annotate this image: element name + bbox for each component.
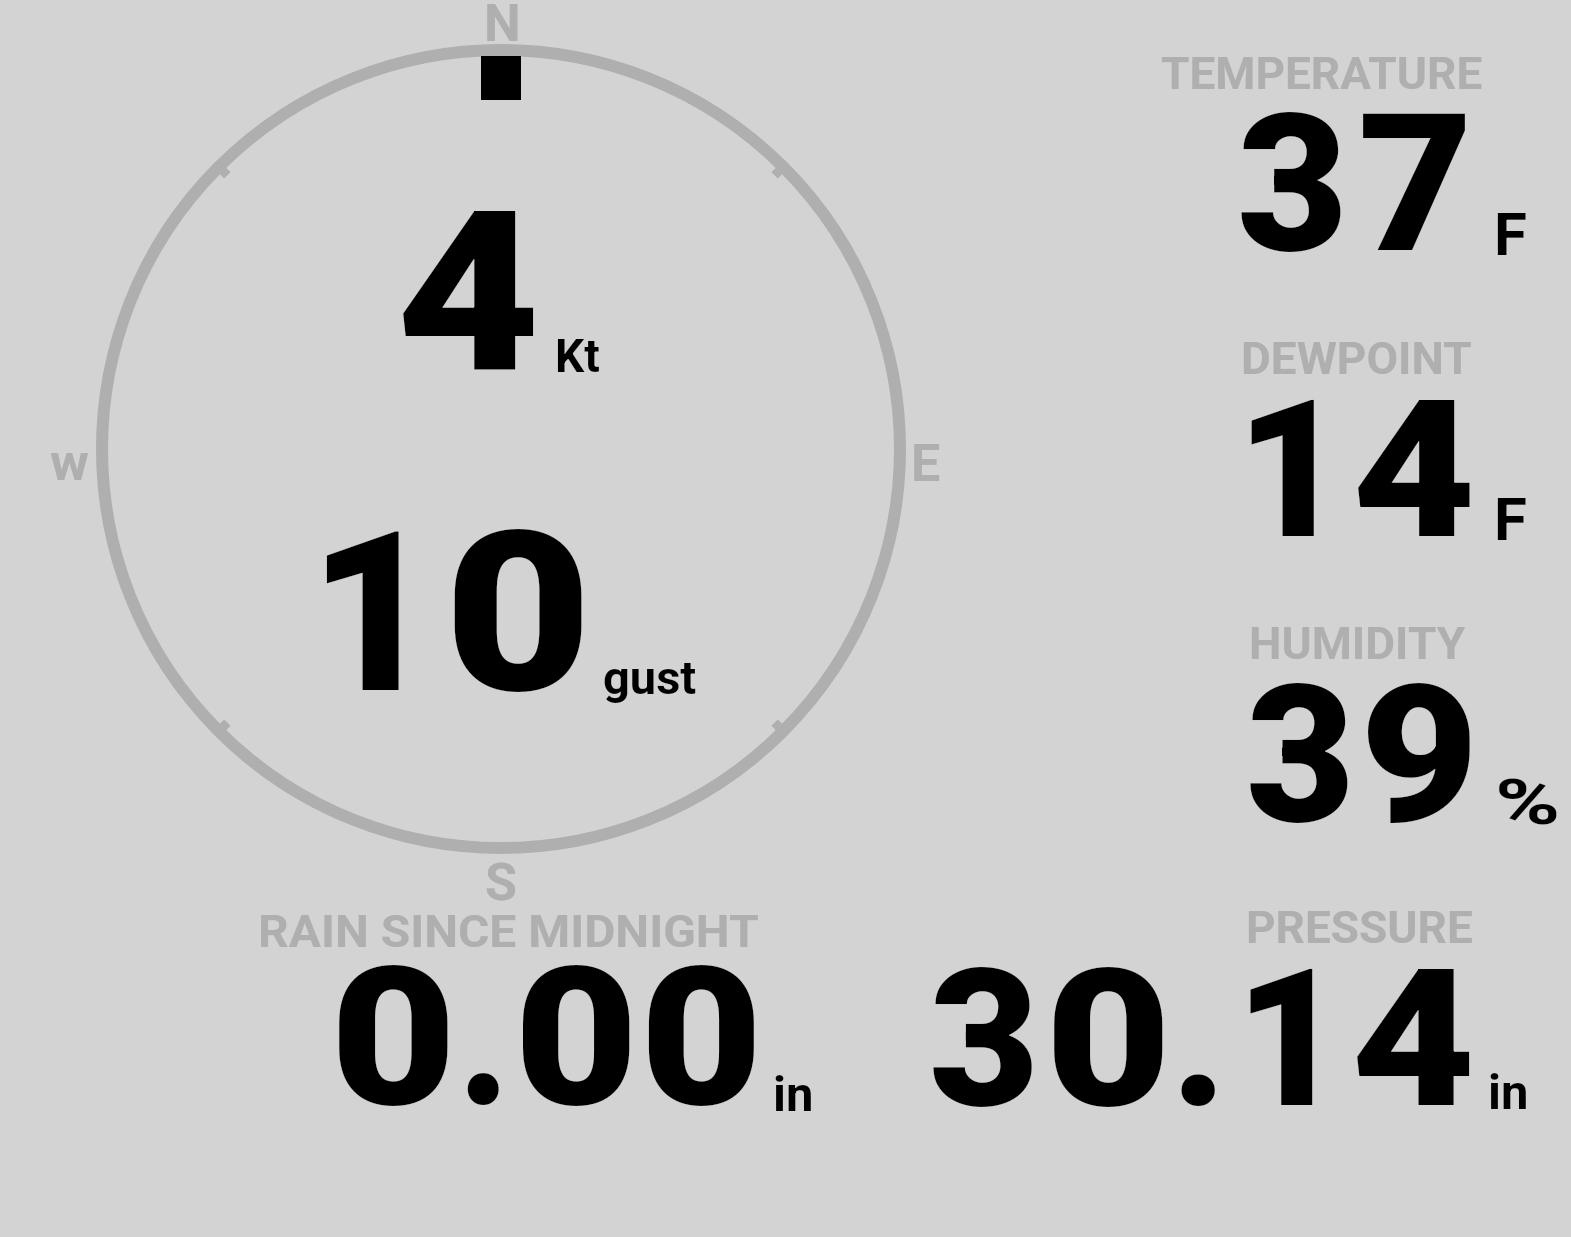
staticText: 0: [1045, 928, 1172, 1152]
staticText: TEMPERATURE: [1161, 47, 1482, 100]
staticText: 9: [1360, 644, 1479, 868]
staticText: 3: [1237, 73, 1348, 297]
staticText: w: [50, 432, 90, 493]
staticText: 0: [640, 925, 763, 1151]
staticText: 4: [1351, 928, 1476, 1152]
staticText: 0: [330, 925, 457, 1151]
staticText: PRESSURE: [1246, 901, 1473, 954]
staticText: 1: [1235, 928, 1345, 1152]
staticText: 7: [1358, 73, 1473, 297]
staticText: N: [484, 0, 521, 54]
staticText: 0: [444, 484, 592, 744]
staticText: E: [911, 434, 941, 494]
staticText: Kt: [555, 329, 600, 383]
staticText: in: [773, 1066, 814, 1123]
staticText: 0: [514, 925, 639, 1151]
staticText: F: [1494, 484, 1527, 554]
button[interactable]: Wind speed and direction: [60, 0, 950, 900]
staticText: S: [485, 853, 518, 913]
staticText: 3: [1246, 644, 1355, 868]
staticText: 1: [309, 484, 437, 744]
staticText: .: [458, 925, 510, 1151]
staticText: HUMIDITY: [1249, 617, 1465, 670]
staticText: .: [1171, 928, 1227, 1152]
staticText: F: [1494, 199, 1527, 269]
button[interactable]: Dewpoint 14 F: [1130, 315, 1571, 595]
staticText: %: [1495, 766, 1561, 840]
staticText: 4: [1352, 359, 1476, 582]
staticText: 1: [1236, 359, 1347, 582]
staticText: 3: [929, 928, 1040, 1152]
staticText: RAIN SINCE MIDNIGHT: [258, 905, 760, 958]
staticText: 4: [396, 164, 541, 424]
staticText: DEWPOINT: [1241, 332, 1472, 385]
button[interactable]: Pressure 30.14 in: [900, 890, 1560, 1140]
staticText: in: [1488, 1064, 1529, 1121]
staticText: gust: [603, 650, 697, 705]
button[interactable]: Rain since midnight 0.00 in: [230, 890, 850, 1140]
button[interactable]: Temperature 37 F: [1130, 35, 1571, 310]
button[interactable]: Humidity 39 percent: [1130, 600, 1571, 880]
